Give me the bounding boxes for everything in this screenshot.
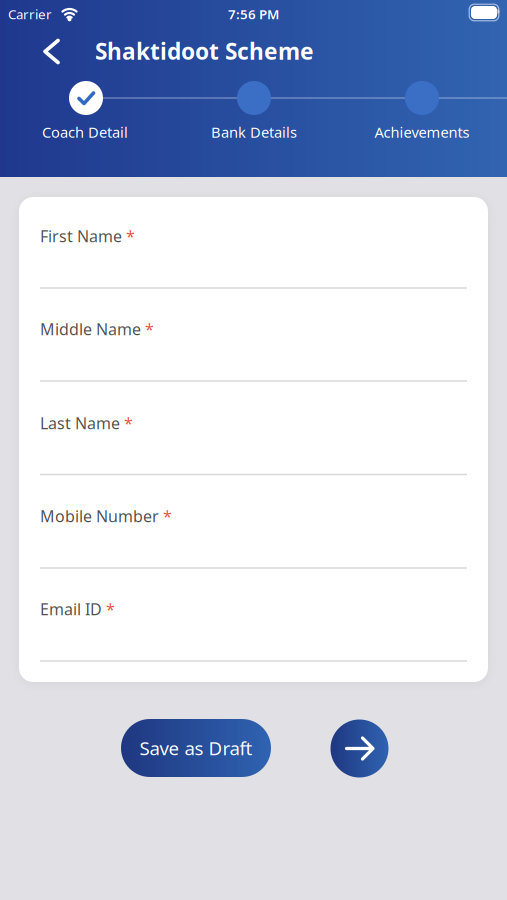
staticText: Carrier: [8, 5, 52, 23]
staticText: Save as Draft: [139, 736, 252, 760]
staticText: *: [145, 318, 154, 340]
staticText: *: [126, 225, 135, 247]
button[interactable]: Back: [36, 34, 66, 68]
staticText: Bank Details: [211, 122, 297, 142]
staticText: Email ID: [40, 598, 102, 620]
staticText: Last Name: [40, 412, 120, 434]
button[interactable]: Next: [330, 719, 388, 777]
staticText: Shaktidoot Scheme: [95, 36, 314, 66]
staticText: *: [106, 598, 115, 620]
staticText: Coach Detail: [42, 122, 128, 142]
staticText: *: [124, 412, 133, 434]
staticText: *: [163, 505, 172, 527]
staticText: Middle Name: [40, 318, 141, 340]
staticText: First Name: [40, 225, 122, 247]
staticText: 7:56 PM: [228, 5, 279, 23]
button[interactable]: Save as Draft: [121, 719, 271, 777]
staticText: Mobile Number: [40, 505, 159, 527]
staticText: Achievements: [374, 122, 469, 142]
